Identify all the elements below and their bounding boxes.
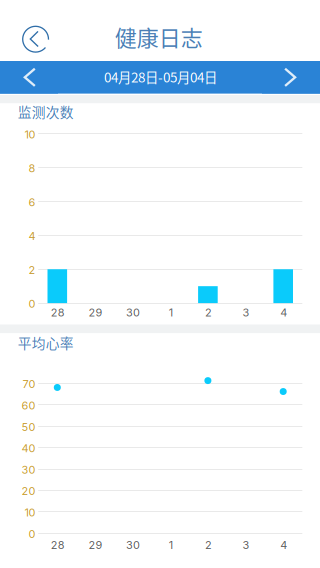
staticText: 4 <box>28 229 35 243</box>
staticText: 3 <box>243 538 250 552</box>
staticText: 20 <box>21 484 35 498</box>
staticText: 28 <box>51 538 65 552</box>
staticText: 6 <box>28 196 35 209</box>
staticText: 2 <box>28 263 35 276</box>
staticText: 3 <box>243 306 250 319</box>
staticText: 30 <box>126 538 140 552</box>
staticText: 2 <box>205 538 212 552</box>
staticText: 4 <box>280 306 287 319</box>
staticText: 60 <box>21 399 35 412</box>
staticText: 50 <box>21 420 35 433</box>
staticText: 04月28日-05月04日 <box>104 67 217 86</box>
button[interactable]: Previous week <box>0 61 58 94</box>
button[interactable]: Next week <box>262 61 320 94</box>
staticText: 健康日志 <box>115 21 203 53</box>
staticText: 监测次数 <box>18 101 74 121</box>
staticText: 1 <box>169 538 173 552</box>
staticText: 8 <box>28 162 35 175</box>
staticText: 10 <box>24 506 35 519</box>
staticText: 28 <box>51 306 65 319</box>
staticText: 70 <box>22 377 35 391</box>
staticText: 29 <box>88 306 102 319</box>
staticText: 29 <box>88 538 102 552</box>
staticText: 30 <box>21 463 35 476</box>
staticText: 平均心率 <box>18 332 74 352</box>
staticText: 1 <box>169 306 173 319</box>
staticText: 40 <box>21 442 35 455</box>
staticText: 2 <box>205 306 212 319</box>
staticText: 0 <box>28 297 35 310</box>
staticText: 4 <box>280 538 287 552</box>
staticText: 0 <box>28 527 35 540</box>
staticText: 10 <box>24 128 35 141</box>
staticText: 30 <box>126 306 140 319</box>
button[interactable]: Back <box>14 17 58 61</box>
